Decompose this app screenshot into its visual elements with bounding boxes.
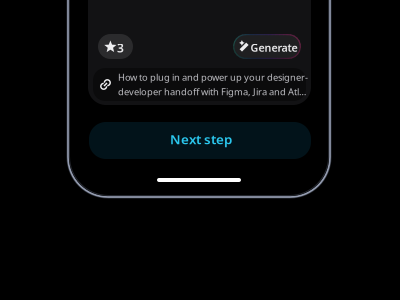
staticText: Generate: [250, 40, 297, 55]
staticText: How to plug in and power up your designe…: [118, 71, 308, 83]
button[interactable]: Generate: [233, 34, 301, 59]
button[interactable]: Next step: [89, 122, 311, 159]
staticText: developer handoff with Figma, Jira and A…: [118, 85, 306, 98]
button[interactable]: 3: [98, 34, 133, 59]
button[interactable]: How to plug in and power up your designe…: [93, 68, 306, 101]
staticText: Next step: [170, 130, 232, 148]
staticText: 3: [117, 40, 124, 56]
